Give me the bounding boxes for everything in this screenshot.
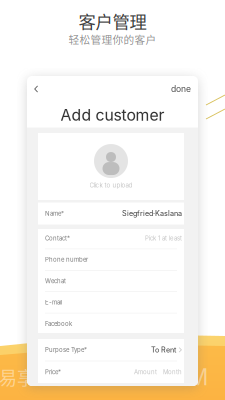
staticText: To Rent — [151, 345, 176, 354]
staticText: done — [171, 84, 191, 94]
staticText: Amount Month — [134, 368, 182, 376]
staticText: 轻松管理你的客户 — [68, 31, 156, 47]
button[interactable]: done — [164, 79, 198, 99]
button[interactable]: Facebook — [38, 313, 184, 334]
button[interactable]: E-mail — [38, 292, 184, 313]
staticText: Siegfried·Kaslana — [122, 209, 182, 218]
staticText: Contact* — [45, 235, 70, 242]
staticText: 易享动手 — [0, 364, 71, 390]
staticText: Pick 1 at least — [145, 235, 182, 242]
staticText: Add customer — [60, 105, 164, 124]
staticText: Name* — [45, 210, 64, 217]
staticText: Phone number — [45, 256, 88, 263]
button[interactable]: Price* — [38, 361, 184, 383]
staticText: Wechat — [45, 277, 66, 285]
staticText: E-mail — [45, 299, 62, 306]
staticText: Purpose Type* — [45, 346, 87, 353]
staticText: 客户管理 — [78, 8, 146, 34]
button[interactable]: Wechat — [38, 271, 184, 291]
staticText: Price* — [45, 368, 61, 376]
staticText: Click to upload — [89, 181, 132, 189]
button[interactable]: Back — [27, 80, 45, 98]
staticText: EDSHZ2.COM — [60, 363, 208, 391]
button[interactable]: Phone number — [38, 249, 184, 270]
button[interactable]: Purpose Type* — [38, 339, 184, 361]
staticText: Facebook — [45, 320, 72, 327]
button[interactable]: Contact* — [38, 228, 184, 249]
button[interactable]: Name* — [38, 202, 184, 224]
